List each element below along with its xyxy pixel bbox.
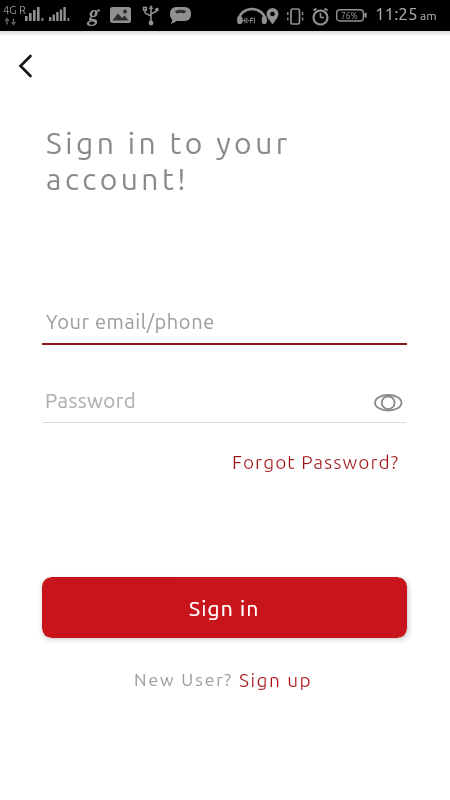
staticText: Sign in [189, 596, 260, 620]
staticText: g [88, 1, 100, 27]
staticText: 76% [341, 11, 358, 21]
button[interactable]: Forgot Password? [232, 451, 400, 472]
button[interactable]: Sign up [239, 665, 313, 686]
button[interactable] [372, 390, 408, 415]
staticText: Your email/phone [46, 310, 215, 332]
staticText: R [19, 4, 26, 16]
staticText: 4G [3, 4, 17, 16]
staticText: Password [45, 389, 137, 412]
staticText: Sign in to your account! [46, 126, 291, 195]
staticText: 11:25 [375, 4, 418, 23]
staticText: Sign up [239, 669, 313, 690]
staticText: Forgot Password? [232, 451, 400, 472]
staticText: HI-FI [241, 16, 256, 24]
button[interactable] [6, 42, 46, 82]
staticText: New User? [134, 670, 234, 690]
staticText: am [420, 9, 437, 22]
button[interactable]: Sign in [42, 577, 407, 638]
